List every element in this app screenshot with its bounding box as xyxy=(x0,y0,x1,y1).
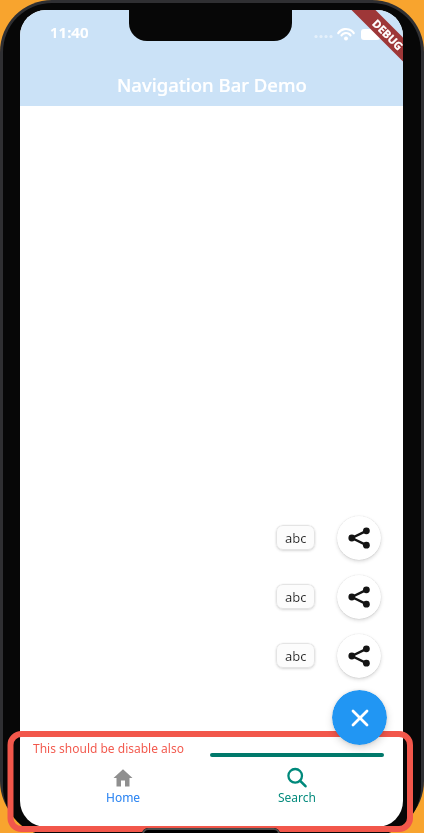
staticText: Search xyxy=(278,789,316,805)
staticText: DEBUG xyxy=(369,16,403,53)
staticText: abc xyxy=(285,529,307,547)
staticText: Navigation Bar Demo xyxy=(117,72,307,96)
button[interactable] xyxy=(337,575,381,619)
button[interactable]: abc xyxy=(276,525,315,550)
staticText: abc xyxy=(285,588,307,606)
button[interactable] xyxy=(332,690,387,745)
button[interactable] xyxy=(337,634,381,678)
staticText: abc xyxy=(285,647,307,665)
button[interactable]: abc xyxy=(276,643,315,668)
button[interactable]: Home xyxy=(83,762,163,812)
staticText: 11:40 xyxy=(50,22,89,42)
button[interactable]: abc xyxy=(276,584,315,609)
staticText: Home xyxy=(106,789,141,805)
staticText: This should be disable also xyxy=(33,740,184,756)
button[interactable] xyxy=(337,516,381,560)
button[interactable]: Search xyxy=(257,762,337,812)
